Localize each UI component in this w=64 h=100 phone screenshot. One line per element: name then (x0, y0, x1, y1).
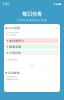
staticText: 今日进度 (8, 27, 20, 30)
staticText: 已完成 1/3 项任务，继续加油 (5, 32, 18, 33)
staticText: 完成任务领取积分奖励 (17, 18, 47, 22)
staticText: 活动规则 (8, 71, 20, 74)
staticText: 观看直播 (9, 45, 21, 48)
staticText: 明日 0 点任务进度重置 (5, 34, 15, 36)
staticText: 积分可在积分商城兑换礼品 (5, 76, 17, 78)
button[interactable]: 分享好友 (5, 50, 58, 56)
staticText: 查看全部 › (54, 27, 58, 29)
staticText: 每日任务 (22, 11, 42, 17)
button[interactable]: 展开更多 (5, 61, 58, 67)
staticText: 9:41 (3, 2, 10, 6)
button[interactable]: 观看直播 (5, 44, 58, 50)
staticText: 分享好友 (9, 51, 21, 54)
staticText: 连续签到 7 天额外奖励 (7, 59, 17, 61)
button[interactable]: 签到领积分 (5, 38, 58, 44)
staticText: 活动最终解释权归主办方所有 (5, 78, 18, 80)
button[interactable]: 查看全部 › (54, 27, 58, 29)
staticText: 展开更多 (30, 65, 34, 67)
staticText: 签到领积分 (9, 39, 24, 42)
